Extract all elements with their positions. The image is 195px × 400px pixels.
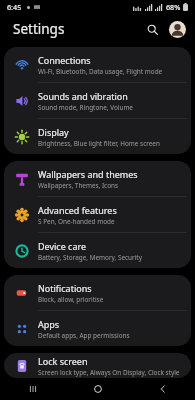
- staticText: Battery, Storage, Memory, Security: [38, 253, 142, 262]
- button[interactable]: Recents: [16, 378, 50, 400]
- staticText: Sound mode, Ringtone, Volume: [38, 103, 133, 112]
- staticText: Screen lock type, Always On Display, Clo…: [38, 368, 180, 377]
- staticText: Brightness, Blue light filter, Home scre…: [38, 139, 160, 148]
- staticText: Settings: [13, 20, 65, 38]
- staticText: Wi-Fi, Bluetooth, Data usage, Flight mod…: [38, 67, 163, 76]
- button[interactable]: Search: [141, 18, 163, 40]
- button[interactable]: Back: [146, 378, 180, 400]
- staticText: Device care: [38, 240, 87, 252]
- button[interactable]: Lock screen: [4, 353, 191, 378]
- button[interactable]: Sounds and vibration: [4, 83, 191, 118]
- staticText: Connections: [38, 54, 91, 66]
- staticText: Advanced features: [38, 204, 117, 216]
- staticText: Wallpapers, Themes, Icons: [38, 181, 119, 190]
- button[interactable]: Advanced features: [4, 197, 191, 232]
- button[interactable]: Apps: [4, 311, 191, 346]
- staticText: Apps: [38, 318, 60, 330]
- staticText: Lock screen: [38, 355, 88, 367]
- staticText: Block, allow, prioritise: [38, 295, 104, 304]
- button[interactable]: Notifications: [4, 275, 191, 310]
- button[interactable]: Device care: [4, 233, 191, 268]
- staticText: Default apps, App permissions: [38, 331, 130, 340]
- button[interactable]: Home: [81, 378, 115, 400]
- staticText: Display: [38, 126, 69, 138]
- staticText: 68%: [166, 2, 181, 12]
- staticText: Notifications: [38, 282, 92, 294]
- staticText: S Pen, One-handed mode: [38, 217, 115, 226]
- button[interactable]: Display: [4, 119, 191, 154]
- button[interactable]: Connections: [4, 47, 191, 82]
- staticText: Sounds and vibration: [38, 90, 128, 102]
- button[interactable]: Account: [167, 19, 187, 39]
- staticText: Wallpapers and themes: [38, 168, 138, 180]
- staticText: 6:45: [7, 2, 22, 12]
- button[interactable]: Wallpapers and themes: [4, 161, 191, 196]
